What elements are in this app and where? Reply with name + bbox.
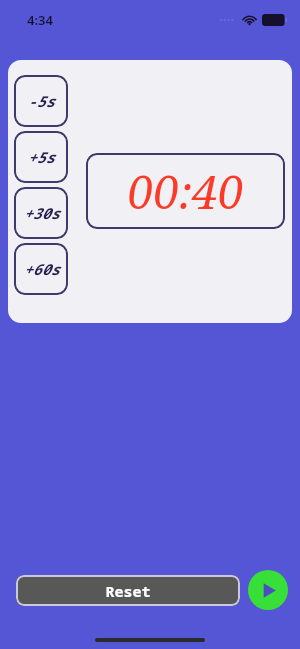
- button[interactable]: Reset: [16, 575, 240, 606]
- button[interactable]: Start timer: [248, 570, 288, 610]
- button[interactable]: +30s: [14, 187, 68, 239]
- button[interactable]: +60s: [14, 243, 68, 295]
- staticText: +30s: [23, 203, 60, 223]
- staticText: -5s: [27, 91, 55, 111]
- staticText: +60s: [23, 259, 60, 279]
- button[interactable]: +5s: [14, 131, 68, 183]
- staticText: 00:40: [127, 160, 244, 223]
- staticText: 4:34: [27, 11, 53, 29]
- staticText: Reset: [105, 581, 151, 601]
- button[interactable]: -5s: [14, 75, 68, 127]
- staticText: +5s: [27, 147, 55, 167]
